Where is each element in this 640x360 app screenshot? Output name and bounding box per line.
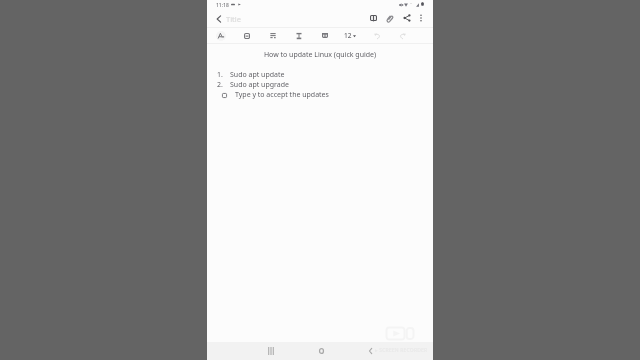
staticText: Sudo apt upgrade	[230, 80, 289, 90]
button[interactable]: Redo	[394, 28, 410, 43]
button[interactable]: Font size	[337, 28, 363, 43]
button[interactable]: Paragraph style	[265, 28, 281, 43]
button[interactable]: Recent apps	[259, 342, 283, 360]
button[interactable]: Insert table	[317, 28, 333, 43]
button[interactable]: Share	[399, 10, 415, 26]
button[interactable]: Navigate up	[210, 10, 227, 27]
staticText: 2.	[217, 80, 223, 90]
staticText: 1.	[217, 70, 223, 80]
button[interactable]: Reading mode	[365, 10, 381, 26]
staticText: Sudo apt update	[230, 70, 285, 80]
staticText: 12	[344, 31, 352, 40]
button[interactable]: Undo	[369, 28, 385, 43]
staticText: Type y to accept the updates	[235, 90, 329, 100]
button[interactable]: Back	[358, 342, 382, 360]
staticText: How to update Linux (quick guide)	[207, 50, 433, 60]
staticText: Title	[226, 14, 241, 24]
staticText: 11:18	[216, 2, 229, 9]
button[interactable]: Line spacing	[291, 28, 307, 43]
button[interactable]: Home	[309, 342, 333, 360]
button[interactable]: Insert note	[239, 28, 255, 43]
button[interactable]: More options	[413, 10, 429, 26]
button[interactable]: Text format	[213, 28, 229, 43]
button[interactable]: Attach file	[382, 10, 398, 26]
